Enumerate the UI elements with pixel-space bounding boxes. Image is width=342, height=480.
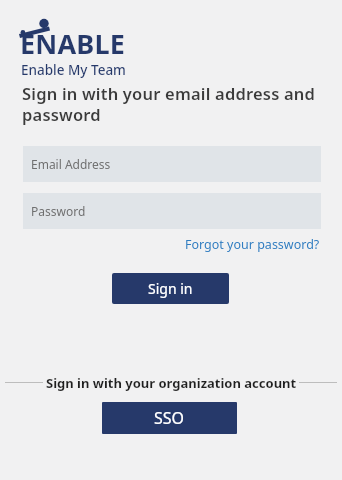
button[interactable]: Password	[23, 193, 321, 229]
button[interactable]: Email Address	[23, 146, 321, 182]
staticText: Sign in	[148, 279, 193, 298]
staticText: Enable My Team	[21, 61, 126, 79]
staticText: Email Address	[31, 156, 111, 172]
staticText: Password	[31, 203, 86, 219]
button[interactable]: Sign in	[112, 273, 229, 304]
staticText: Sign in with your email address and pass…	[22, 82, 324, 128]
button[interactable]: SSO	[102, 402, 237, 434]
staticText: ENABLE	[20, 25, 126, 62]
staticText: Sign in with your organization account	[46, 374, 297, 392]
button[interactable]: Forgot your password?	[185, 236, 320, 253]
staticText: SSO	[154, 407, 185, 429]
